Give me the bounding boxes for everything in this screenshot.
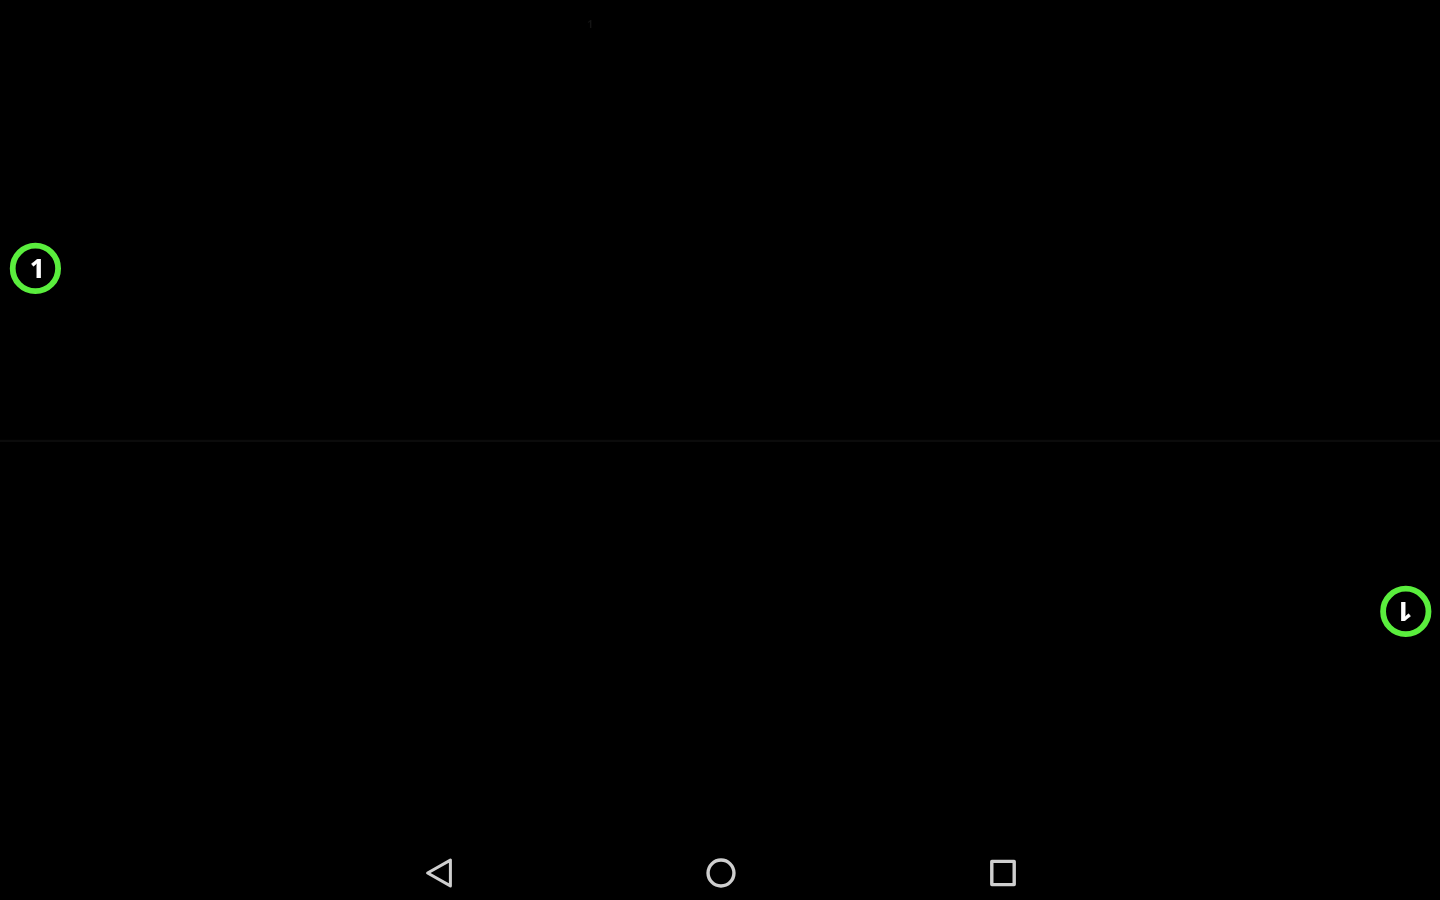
button[interactable]: Player score 1 [7, 240, 63, 296]
button[interactable]: Back [367, 837, 511, 900]
staticText: 1 [1397, 595, 1412, 630]
button[interactable]: Player score 1 [1377, 583, 1433, 639]
staticText: 1 [30, 250, 45, 285]
button[interactable]: Recent apps [931, 837, 1075, 900]
staticText: 1 [587, 16, 594, 31]
button[interactable]: Home [649, 837, 793, 900]
